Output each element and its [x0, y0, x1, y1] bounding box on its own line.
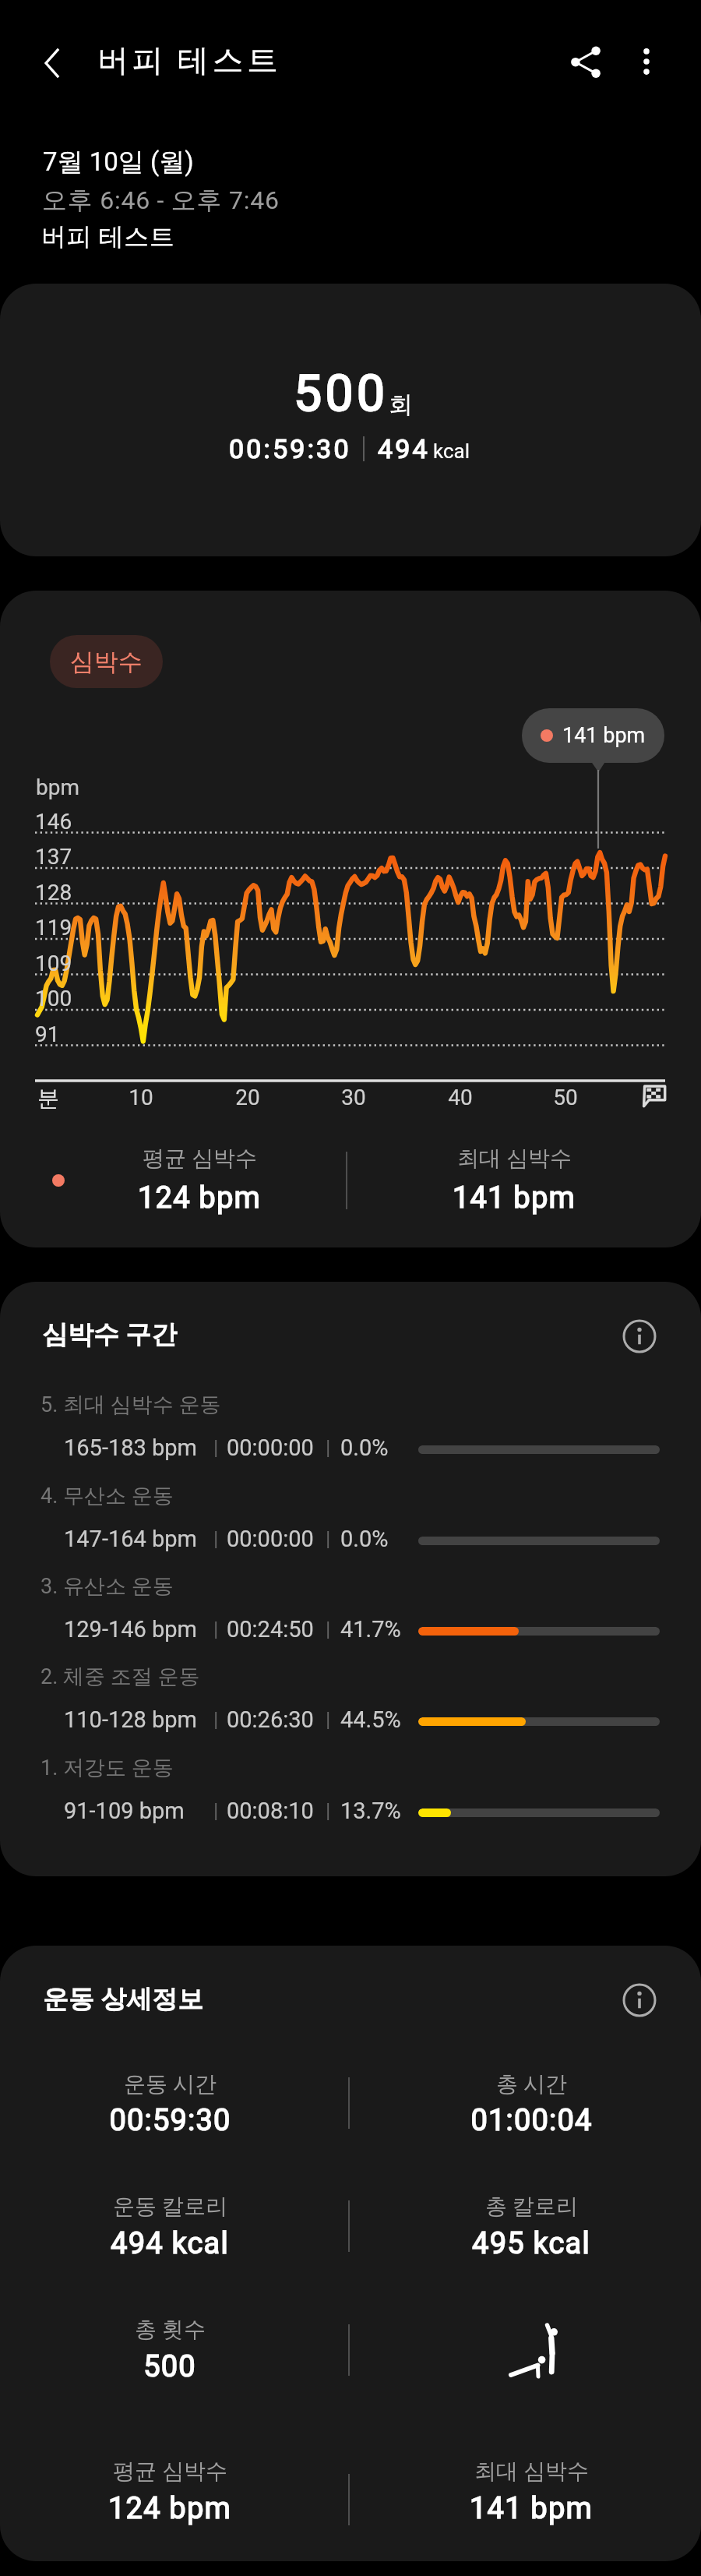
button[interactable]: 심박수	[50, 635, 163, 688]
staticText: 평균 심박수	[113, 2458, 227, 2485]
staticText: 00:00:00	[227, 1434, 314, 1461]
staticText: 총 횟수	[135, 2316, 206, 2343]
staticText: |	[326, 1799, 331, 1823]
staticText: bpm	[36, 775, 79, 800]
staticText: 128	[35, 880, 72, 905]
button[interactable]: Information	[619, 1316, 660, 1357]
staticText: 50	[553, 1085, 578, 1110]
staticText: 운동 시간	[124, 2070, 217, 2098]
staticText: 20	[235, 1085, 260, 1110]
staticText: |	[213, 1527, 219, 1551]
staticText: 분	[37, 1085, 59, 1112]
staticText: 2. 체중 조절 운동	[41, 1664, 200, 1690]
staticText: 00:26:30	[227, 1706, 314, 1733]
staticText: 총 시간	[496, 2070, 567, 2098]
staticText: 494 kcal	[111, 2226, 229, 2261]
staticText: 평균 심박수	[143, 1145, 257, 1172]
staticText: 00:08:10	[227, 1798, 314, 1824]
staticText: 00:00:00	[227, 1526, 314, 1552]
staticText: |	[213, 1708, 219, 1731]
staticText: 146	[35, 809, 72, 835]
staticText: |	[213, 1618, 219, 1641]
staticText: 165-183 bpm	[64, 1434, 197, 1461]
staticText: 5. 최대 심박수 운동	[41, 1392, 221, 1418]
staticText: 40	[448, 1085, 473, 1110]
staticText: 버피 테스트	[41, 221, 175, 252]
staticText: 124 bpm	[138, 1180, 261, 1216]
staticText: 00:59:30	[109, 2103, 231, 2138]
staticText: 91-109 bpm	[64, 1798, 185, 1824]
staticText: |	[326, 1708, 331, 1731]
staticText: 0.0%	[340, 1434, 389, 1461]
staticText: 총 칼로리	[485, 2193, 578, 2220]
button[interactable]: More options	[615, 30, 678, 93]
staticText: |	[213, 1799, 219, 1823]
button[interactable]: Back	[22, 32, 84, 94]
staticText: 124 bpm	[108, 2491, 231, 2526]
staticText: 13.7%	[340, 1798, 401, 1824]
staticText: 129-146 bpm	[64, 1616, 197, 1643]
staticText: kcal	[433, 439, 470, 463]
staticText: 494	[378, 433, 430, 464]
staticText: 10	[129, 1085, 153, 1110]
staticText: 3. 유산소 운동	[41, 1573, 174, 1600]
staticText: 1. 저강도 운동	[41, 1755, 174, 1781]
staticText: 500	[294, 365, 389, 423]
button[interactable]: Share	[555, 30, 617, 93]
staticText: 500	[143, 2349, 196, 2384]
staticText: 41.7%	[340, 1616, 401, 1643]
staticText: 01:00:04	[470, 2103, 593, 2138]
staticText: 100	[35, 986, 72, 1011]
staticText: 운동 상세정보	[43, 1983, 204, 2016]
staticText: |	[326, 1527, 331, 1551]
staticText: 오후 6:46 - 오후 7:46	[42, 185, 280, 216]
staticText: 00:59:30	[229, 433, 351, 464]
staticText: 4. 무산소 운동	[41, 1483, 174, 1509]
staticText: 7월 10일 (월)	[43, 146, 194, 178]
staticText: 최대 심박수	[474, 2458, 589, 2485]
staticText: |	[326, 1618, 331, 1641]
staticText: 91	[35, 1022, 60, 1047]
button[interactable]: Information	[619, 1980, 660, 2020]
staticText: 119	[35, 915, 72, 940]
staticText: |	[213, 1436, 219, 1459]
staticText: 147-164 bpm	[64, 1526, 197, 1552]
staticText: 141 bpm	[562, 723, 646, 748]
staticText: 운동 칼로리	[113, 2193, 227, 2220]
staticText: 최대 심박수	[457, 1145, 572, 1172]
staticText: 137	[35, 844, 72, 870]
staticText: 30	[341, 1085, 366, 1110]
staticText: 심박수 구간	[42, 1318, 178, 1351]
staticText: 110-128 bpm	[64, 1706, 197, 1733]
staticText: 495 kcal	[472, 2226, 590, 2261]
staticText: 버피 테스트	[97, 41, 282, 79]
staticText: 심박수	[70, 647, 143, 677]
staticText: |	[326, 1436, 331, 1459]
staticText: 44.5%	[340, 1706, 401, 1733]
staticText: 회	[389, 390, 413, 420]
staticText: 109	[35, 951, 72, 976]
staticText: 00:24:50	[227, 1616, 314, 1643]
staticText: 141 bpm	[453, 1180, 576, 1216]
staticText: 0.0%	[340, 1526, 389, 1552]
staticText: 141 bpm	[470, 2491, 593, 2526]
